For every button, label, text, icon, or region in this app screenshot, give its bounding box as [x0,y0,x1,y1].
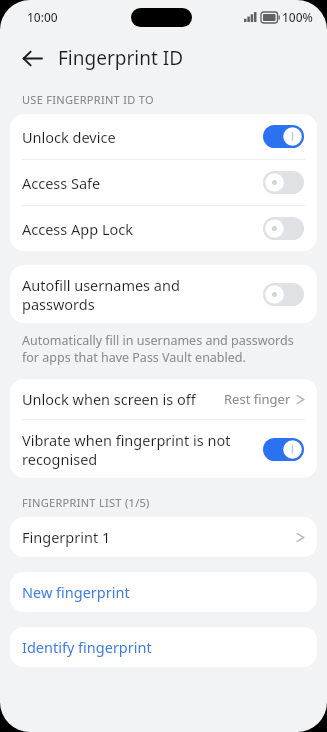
button[interactable]: Fingerprint 1 [10,517,317,557]
staticText: New fingerprint [22,582,130,602]
staticText: Rest finger [224,390,291,408]
staticText: Autofill usernames and passwords [22,275,255,314]
staticText: 10:00 [27,9,58,25]
staticText: 100% [282,9,313,25]
staticText: Automatically fill in usernames and pass… [22,332,307,366]
button[interactable]: Back [12,38,52,78]
button[interactable]: Access App Lock [10,206,317,251]
button[interactable]: Unlock device [10,114,317,159]
staticText: Fingerprint 1 [22,527,296,547]
staticText: Unlock device [22,127,255,147]
staticText: FINGERPRINT LIST (1/5) [22,495,150,510]
staticText: Vibrate when fingerprint is not recognis… [22,430,255,469]
staticText: Fingerprint ID [58,45,184,71]
button[interactable]: Vibrate when fingerprint is not recognis… [10,420,317,478]
staticText: USE FINGERPRINT ID TO [22,92,154,107]
button[interactable]: Access Safe [10,160,317,205]
staticText: Unlock when screen is off [22,389,224,409]
button[interactable]: New fingerprint [10,572,317,612]
button[interactable]: Identify fingerprint [10,627,317,667]
staticText: Identify fingerprint [22,637,152,657]
button[interactable]: Unlock when screen is off [10,379,317,419]
staticText: Access App Lock [22,219,255,239]
staticText: Access Safe [22,173,255,193]
button[interactable]: Autofill usernames and passwords [10,265,317,323]
